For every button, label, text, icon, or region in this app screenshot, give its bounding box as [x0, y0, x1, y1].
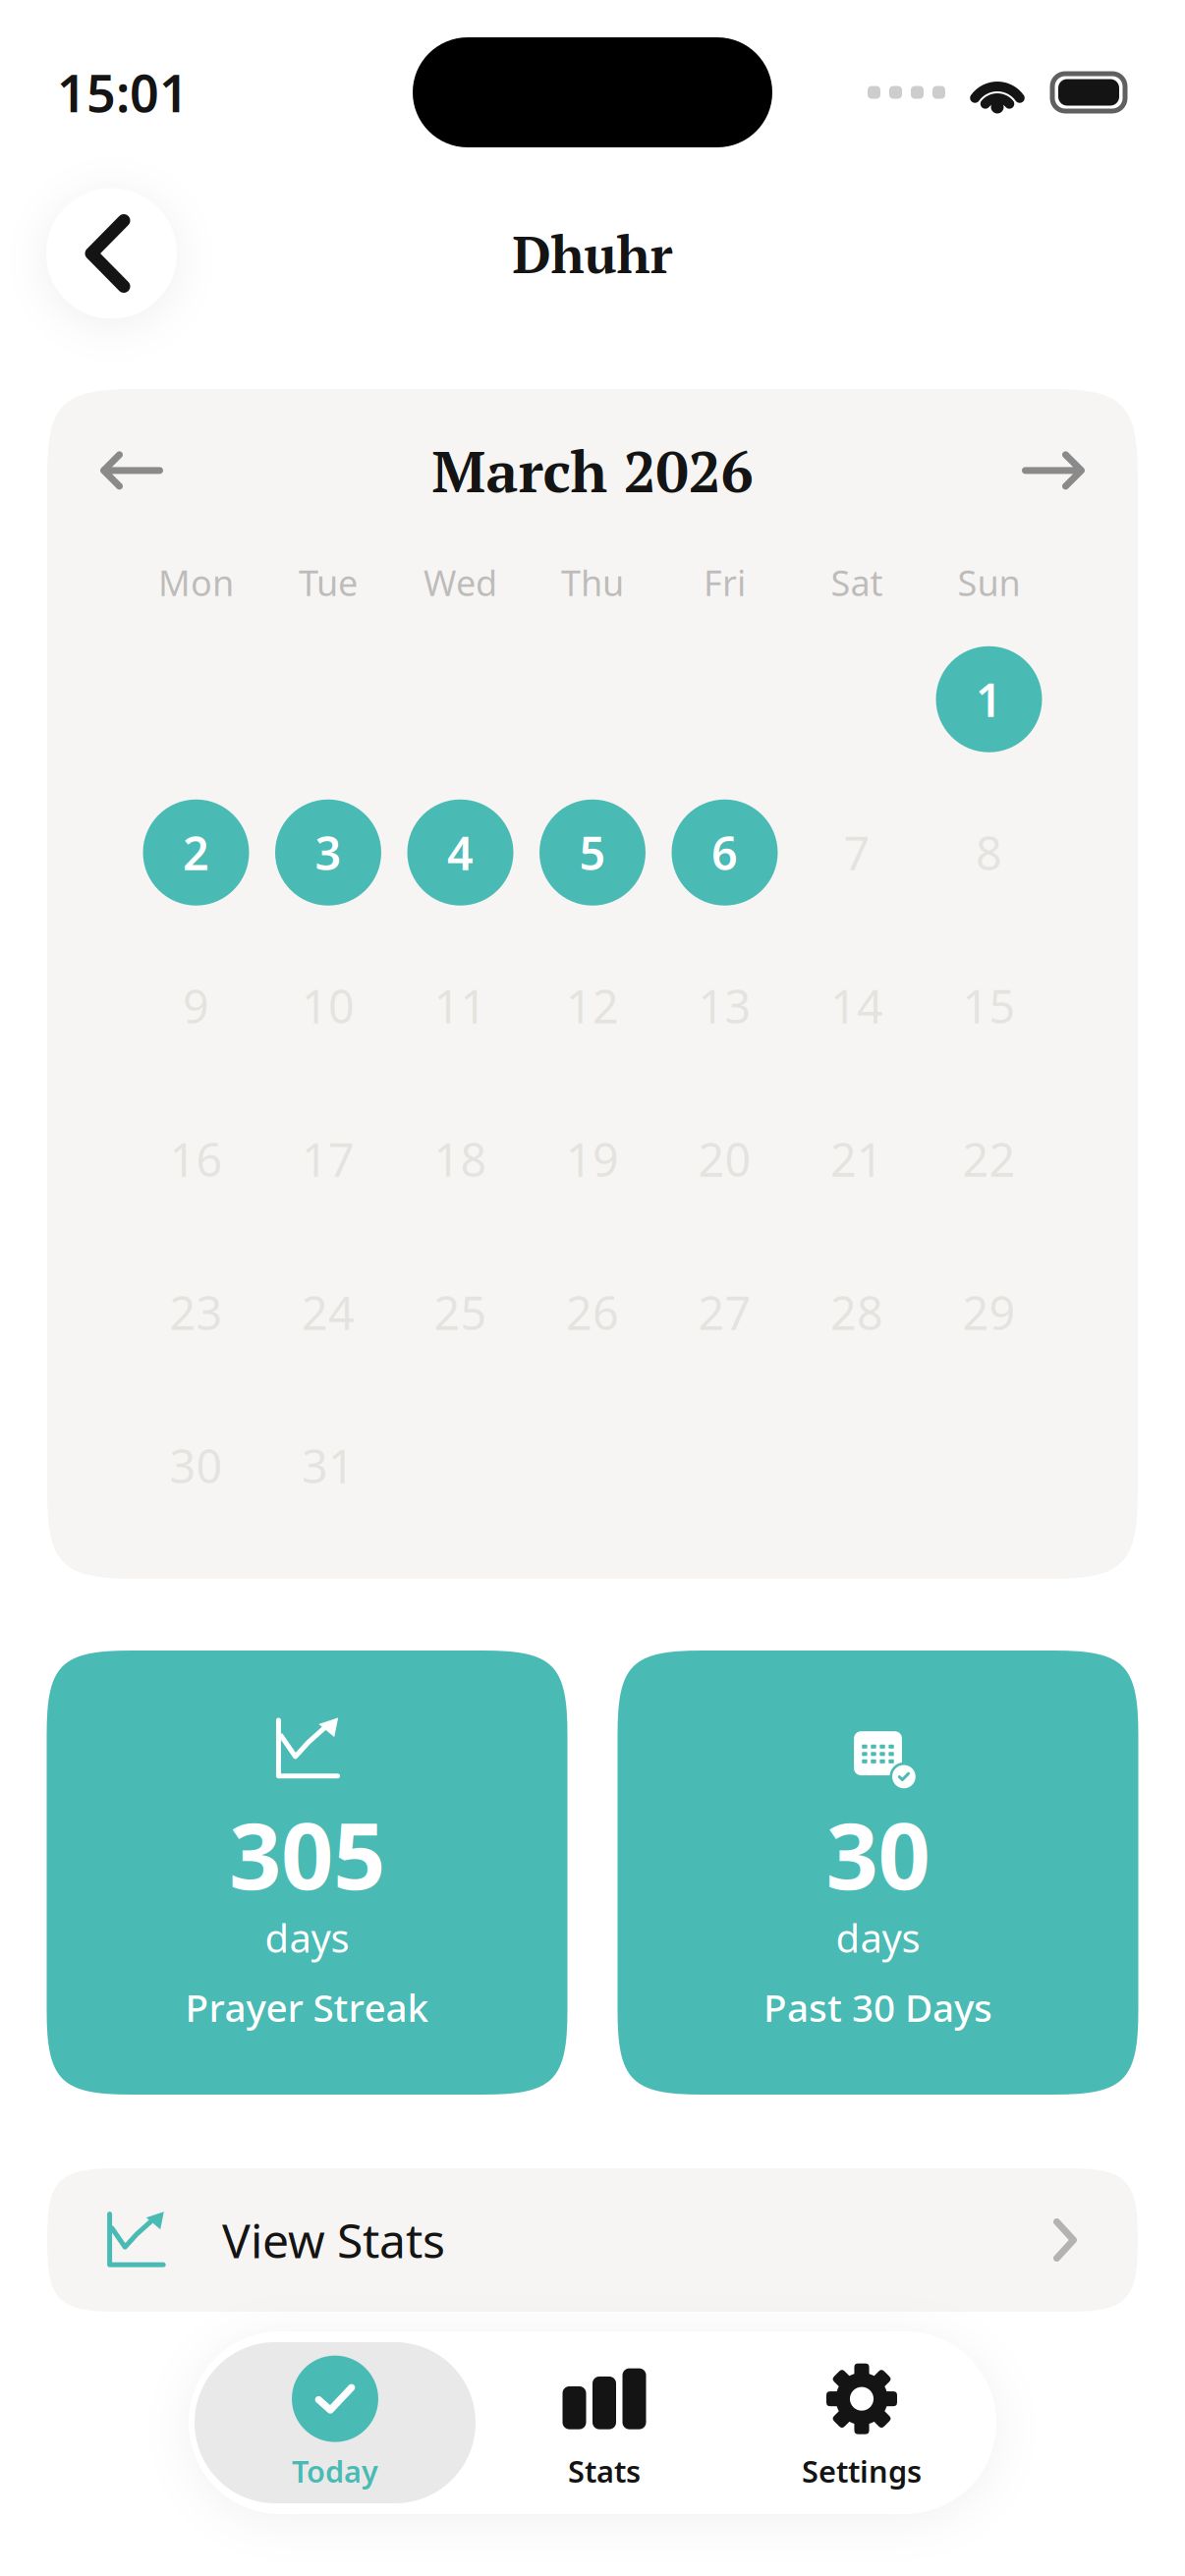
- staticText: Wed: [423, 559, 497, 606]
- staticText: 3: [315, 822, 341, 883]
- staticText: Sun: [958, 559, 1020, 606]
- staticText: 9: [183, 975, 209, 1036]
- button[interactable]: Today: [195, 2342, 476, 2503]
- staticText: 5: [579, 822, 606, 883]
- staticText: 27: [698, 1282, 751, 1343]
- staticText: 10: [302, 975, 355, 1036]
- button[interactable]: Previous month: [86, 435, 177, 506]
- staticText: Prayer Streak: [185, 1982, 429, 2032]
- staticText: 26: [566, 1282, 619, 1343]
- staticText: 30: [826, 1793, 930, 1915]
- staticText: Mon: [158, 559, 234, 606]
- staticText: Stats: [568, 2451, 641, 2491]
- staticText: March 2026: [432, 432, 753, 509]
- staticText: Dhuhr: [512, 219, 673, 288]
- staticText: days: [265, 1911, 349, 1963]
- staticText: 15: [962, 975, 1016, 1036]
- staticText: Fri: [704, 559, 746, 606]
- button[interactable]: Settings: [733, 2342, 990, 2503]
- button[interactable]: View Stats: [47, 2168, 1138, 2312]
- staticText: 30: [169, 1435, 223, 1496]
- staticText: 11: [434, 975, 487, 1036]
- staticText: 14: [830, 975, 883, 1036]
- staticText: 18: [434, 1129, 487, 1189]
- staticText: 21: [830, 1129, 883, 1189]
- button[interactable]: Next month: [1008, 435, 1099, 506]
- staticText: 2: [183, 822, 209, 883]
- staticText: 12: [566, 975, 619, 1036]
- staticText: 29: [962, 1282, 1016, 1343]
- staticText: Today: [292, 2451, 378, 2491]
- staticText: 20: [698, 1129, 751, 1189]
- staticText: 16: [169, 1129, 223, 1189]
- staticText: 22: [962, 1129, 1016, 1189]
- staticText: 1: [976, 669, 1002, 730]
- staticText: 19: [566, 1129, 619, 1189]
- staticText: 6: [711, 822, 738, 883]
- button[interactable]: Back: [46, 188, 177, 319]
- staticText: 4: [447, 822, 474, 883]
- staticText: 24: [302, 1282, 355, 1343]
- staticText: 17: [302, 1129, 355, 1189]
- button[interactable]: Stats: [476, 2342, 733, 2503]
- staticText: Thu: [561, 559, 624, 606]
- staticText: 31: [302, 1435, 355, 1496]
- staticText: Sat: [831, 559, 883, 606]
- staticText: 23: [169, 1282, 223, 1343]
- staticText: 305: [229, 1793, 385, 1915]
- staticText: 13: [698, 975, 751, 1036]
- staticText: 28: [830, 1282, 883, 1343]
- staticText: 7: [844, 822, 870, 883]
- staticText: Settings: [802, 2451, 922, 2491]
- staticText: days: [836, 1911, 920, 1963]
- staticText: Past 30 Days: [763, 1982, 992, 2032]
- staticText: 8: [976, 822, 1002, 883]
- staticText: View Stats: [222, 2209, 445, 2271]
- staticText: 15:01: [57, 58, 189, 126]
- staticText: Tue: [299, 559, 358, 606]
- staticText: 25: [434, 1282, 487, 1343]
